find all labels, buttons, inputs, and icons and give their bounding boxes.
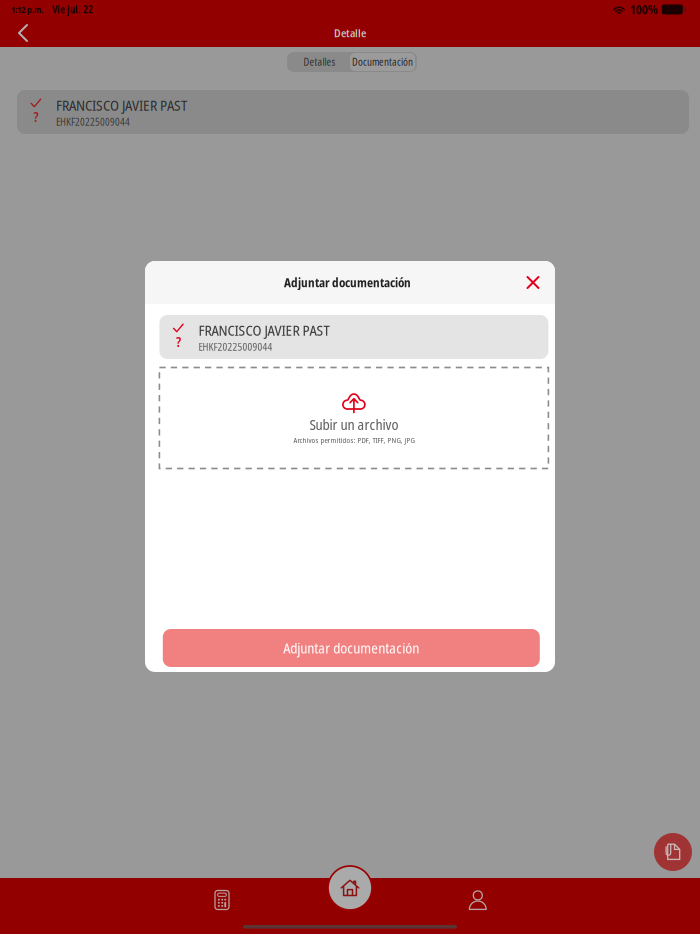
button[interactable]: Detalles (289, 53, 350, 71)
staticText: Adjuntar documentación (284, 274, 411, 291)
staticText: Detalles (303, 55, 335, 69)
staticText: FRANCISCO JAVIER PAST (198, 320, 329, 340)
button[interactable]: Adjuntar documento (654, 833, 692, 871)
staticText: Adjuntar documentación (283, 638, 419, 658)
staticText: Vie jul. 22 (52, 3, 93, 16)
button[interactable]: Documentación (350, 53, 415, 71)
staticText: EHKF20225009044 (198, 340, 272, 354)
button[interactable]: Adjuntar documentación (163, 629, 540, 667)
staticText: 1:12 p.m. (11, 3, 43, 16)
staticText: Documentación (352, 55, 413, 69)
button[interactable]: ? (17, 90, 689, 134)
button[interactable]: Perfil (430, 878, 526, 922)
button[interactable]: Calculadora (174, 878, 270, 922)
staticText: Subir un archivo (309, 415, 398, 434)
button[interactable]: Subir un archivo (159, 367, 548, 468)
staticText: 100% (630, 1, 658, 18)
staticText: Detalle (334, 25, 366, 41)
staticText: FRANCISCO JAVIER PAST (56, 95, 187, 115)
staticText: ? (176, 333, 181, 351)
button[interactable]: Atrás (0, 19, 46, 47)
staticText: Archivos permitidos: PDF, TIFF, PNG, JPG (293, 435, 414, 445)
staticText: EHKF20225009044 (56, 115, 130, 129)
button[interactable]: Inicio (328, 866, 372, 910)
staticText: ? (33, 108, 38, 126)
button[interactable]: Cerrar (516, 265, 550, 299)
